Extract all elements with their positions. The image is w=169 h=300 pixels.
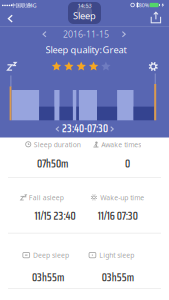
button[interactable]: Settings: [0, 0, 169, 300]
button[interactable]: Rate 5 stars: [0, 0, 169, 300]
staticText: 03h55m: [102, 269, 134, 286]
staticText: 80%: [139, 2, 149, 9]
button[interactable]: Sleep tab: [68, 2, 101, 24]
staticText: Awake times: [101, 140, 141, 149]
staticText: Light sleep: [99, 250, 134, 260]
button[interactable]: Share: [0, 0, 169, 300]
staticText: 4G: [29, 2, 36, 9]
staticText: 中国联通: [11, 2, 31, 9]
staticText: 0: [125, 155, 130, 172]
staticText: Sleep duration: [34, 140, 81, 149]
staticText: 11/16 07:30: [98, 207, 138, 224]
staticText: 03h55m: [32, 269, 64, 286]
staticText: 2016-11-15: [63, 28, 109, 40]
staticText: Deep sleep: [33, 250, 69, 260]
button[interactable]: Next day: [0, 0, 169, 300]
button[interactable]: Rate 1 stars: [0, 0, 169, 300]
staticText: Sleep: [73, 9, 96, 22]
staticText: 14:53: [77, 2, 91, 9]
staticText: Sleep quality:Great: [45, 43, 126, 56]
button[interactable]: Previous night: [0, 0, 169, 300]
staticText: Wake-up time: [100, 193, 144, 202]
staticText: 23:40-07:30: [62, 120, 108, 137]
button[interactable]: Previous day: [0, 0, 169, 300]
button[interactable]: Back: [0, 0, 169, 300]
button[interactable]: Rate 4 stars: [0, 0, 169, 300]
staticText: 11/15 23:40: [34, 207, 75, 224]
button[interactable]: Rate 2 stars: [0, 0, 169, 300]
staticText: Fall asleep: [29, 193, 64, 202]
staticText: 07h50m: [37, 155, 68, 172]
button[interactable]: Next night: [0, 0, 169, 300]
button[interactable]: Rate 3 stars: [0, 0, 169, 300]
